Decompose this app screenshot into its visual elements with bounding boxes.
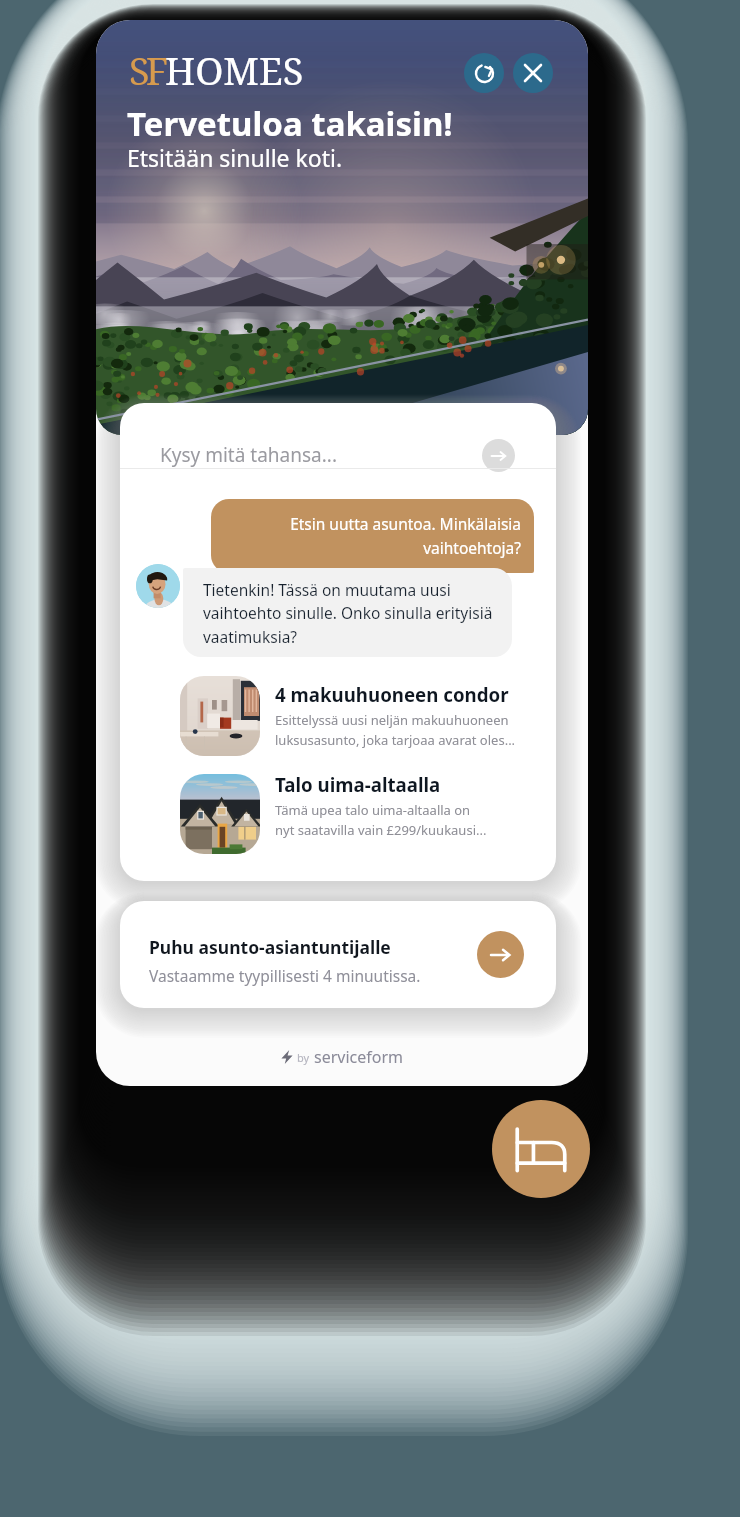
staticText: Talo uima-altaalla <box>275 772 441 797</box>
button[interactable]: Etsin uutta asuntoa. Minkälaisia vaihtoe… <box>211 499 534 573</box>
staticText: SF <box>129 44 165 96</box>
staticText: Tervetuloa takaisin! <box>127 101 453 146</box>
button[interactable]: Refresh <box>464 53 504 93</box>
staticText: Esittelyssä uusi neljän makuuhuoneen luk… <box>275 711 516 749</box>
staticText: Etsin uutta asuntoa. Minkälaisia vaihtoe… <box>230 513 521 558</box>
staticText: HOMES <box>165 44 304 96</box>
staticText: serviceform <box>314 1046 404 1068</box>
staticText: by <box>297 1050 310 1065</box>
staticText: Etsitään sinulle koti. <box>127 142 343 173</box>
button[interactable]: Puhu asunto-asiantuntijalle <box>120 901 556 1008</box>
button[interactable]: 4 makuuhuoneen condor <box>160 664 556 764</box>
staticText: Tämä upea talo uima-altaalla on nyt saat… <box>275 801 487 839</box>
staticText: Tietenkin! Tässä on muutama uusi vaihtoe… <box>203 579 495 648</box>
button[interactable]: Close <box>513 53 553 93</box>
button[interactable]: Open chat <box>492 1100 590 1198</box>
button[interactable]: Talo uima-altaalla <box>160 754 556 854</box>
staticText: Kysy mitä tahansa... <box>160 442 338 468</box>
button[interactable]: Send <box>482 439 515 472</box>
button[interactable]: Ask anything <box>120 403 556 468</box>
staticText: Vastaamme tyypillisesti 4 minuutissa. <box>149 965 421 986</box>
button[interactable]: Tietenkin! Tässä on muutama uusi vaihtoe… <box>183 568 512 657</box>
staticText: 4 makuuhuoneen condor <box>275 682 509 707</box>
staticText: Puhu asunto-asiantuntijalle <box>149 935 391 959</box>
